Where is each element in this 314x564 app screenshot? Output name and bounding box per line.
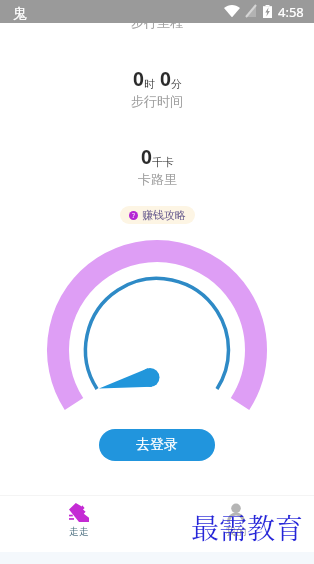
staticText: 0 [133,66,144,92]
button[interactable]: 0 [11,54,303,120]
staticText: 步行时间 [131,93,183,109]
button[interactable]: 0 [11,0,303,41]
staticText: 赚钱攻略 [142,208,186,222]
button[interactable]: 走走 [0,496,157,552]
staticText: 0 [141,144,152,170]
button[interactable]: 去登录 [99,429,215,461]
button[interactable]: ? [120,206,195,224]
button[interactable]: 我的 [157,496,314,552]
staticText: 4:58 [278,3,304,21]
staticText: 最需教育 [191,507,304,547]
staticText: 千卡 [152,155,174,169]
staticText: 鬼 [13,5,27,23]
staticText: ? [132,211,136,220]
staticText: 我的 [226,525,246,538]
staticText: 0 [160,66,171,92]
staticText: 步行里程 [131,14,183,30]
button[interactable]: 0 [11,132,303,198]
staticText: 走走 [69,525,89,538]
staticText: 卡路里 [138,171,177,187]
staticText: 分 [171,77,182,91]
staticText: 去登录 [136,436,178,454]
other: 我的 [226,503,246,522]
staticText: 时 [144,77,155,91]
